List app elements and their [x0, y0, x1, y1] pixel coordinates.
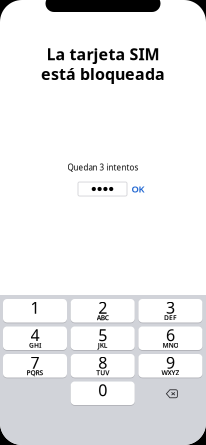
button[interactable]: 3 — [138, 299, 202, 322]
button[interactable]: 1 — [3, 299, 67, 322]
staticText: está bloqueada — [41, 63, 165, 84]
staticText: 8 — [98, 352, 107, 373]
staticText: 2 — [98, 297, 107, 318]
staticText: GHI — [29, 341, 41, 350]
button[interactable]: 4 — [3, 326, 67, 350]
staticText: La tarjeta SIM — [46, 43, 159, 65]
staticText: 0 — [98, 379, 107, 401]
button[interactable]: 0 — [71, 381, 135, 405]
button[interactable]: 5 — [71, 326, 135, 350]
staticText: Quedan 3 intentos — [67, 162, 138, 173]
staticText: 4 — [30, 324, 39, 346]
staticText: WXYZ — [161, 368, 179, 377]
staticText: JKL — [98, 341, 108, 350]
button[interactable]: Delete — [138, 381, 202, 405]
button[interactable]: OK — [128, 182, 148, 196]
button[interactable]: 6 — [138, 326, 202, 350]
button[interactable]: 9 — [138, 354, 202, 377]
staticText: TUV — [96, 368, 109, 377]
button[interactable]: 2 — [71, 299, 135, 322]
staticText: 1 — [30, 297, 39, 318]
button[interactable]: 7 — [3, 354, 67, 377]
staticText: ABC — [97, 313, 109, 322]
staticText: 6 — [166, 324, 175, 346]
staticText: 7 — [30, 352, 39, 373]
staticText: OK — [131, 183, 144, 195]
staticText: PQRS — [26, 368, 43, 377]
button[interactable]: 8 — [71, 354, 135, 377]
staticText: DEF — [164, 313, 177, 322]
staticText: 5 — [98, 324, 107, 346]
staticText: MNO — [162, 341, 178, 350]
staticText: 9 — [166, 352, 175, 373]
staticText: 3 — [166, 297, 175, 318]
